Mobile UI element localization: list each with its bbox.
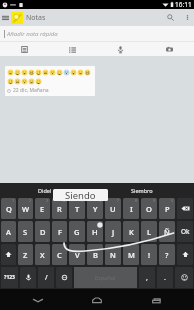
button[interactable]: Ñ	[159, 221, 175, 242]
button[interactable]: P	[159, 198, 175, 219]
staticText: /	[45, 273, 48, 283]
button[interactable]: C	[52, 244, 67, 265]
staticText: Añadir nota rápida	[7, 30, 58, 38]
button[interactable]: Hide keyboard	[16, 289, 60, 310]
button[interactable]: Navigation drawer	[0, 9, 11, 26]
button[interactable]: V	[69, 244, 85, 265]
staticText: J	[112, 227, 115, 237]
button[interactable]: K	[123, 221, 139, 242]
staticText: Q	[6, 204, 12, 214]
button[interactable]: ?123	[1, 267, 18, 288]
button[interactable]: ,	[139, 267, 155, 288]
button[interactable]: lo	[90, 183, 112, 197]
button[interactable]: B	[87, 244, 103, 265]
staticText: O	[146, 204, 152, 214]
button[interactable]: Y	[87, 198, 103, 219]
button[interactable]: Checklist	[48, 42, 96, 56]
button[interactable]: Q	[1, 198, 16, 219]
button[interactable]: R	[52, 198, 67, 219]
staticText: .	[164, 273, 166, 283]
staticText: L	[147, 227, 152, 237]
button[interactable]: L	[141, 221, 157, 242]
staticText: A	[6, 227, 11, 237]
button[interactable]: G	[69, 221, 85, 242]
button[interactable]: Text note	[0, 42, 48, 56]
staticText: Siendo	[65, 189, 96, 201]
button[interactable]: Voice note	[96, 42, 145, 56]
staticText: lo	[99, 187, 104, 194]
button[interactable]: Ok	[177, 221, 193, 242]
staticText: Notas	[26, 13, 46, 23]
staticText: ,	[146, 273, 148, 283]
button[interactable]: Shift	[177, 244, 193, 265]
staticText: ?	[165, 250, 169, 260]
staticText: Ok	[181, 227, 190, 236]
button[interactable]: Voice input	[20, 267, 36, 288]
staticText: X	[40, 250, 45, 260]
staticText: 0	[171, 198, 174, 203]
button[interactable]: ?	[159, 244, 175, 265]
button[interactable]: A	[1, 221, 16, 242]
button[interactable]: Didel	[0, 183, 90, 197]
staticText: N	[110, 250, 116, 260]
staticText: 22 dic, Mañana	[13, 87, 49, 94]
staticText: 5	[81, 198, 84, 203]
button[interactable]: Siembro	[112, 183, 172, 197]
staticText: S	[23, 227, 28, 237]
staticText: 7	[117, 198, 120, 203]
button[interactable]: M	[123, 244, 139, 265]
button[interactable]: H	[87, 221, 103, 242]
button[interactable]: Z	[18, 244, 33, 265]
button[interactable]: X	[35, 244, 50, 265]
button[interactable]: F	[52, 221, 67, 242]
button[interactable]: E	[35, 198, 50, 219]
staticText: U	[110, 204, 116, 214]
button[interactable]: !	[141, 244, 157, 265]
staticText: 1	[12, 198, 15, 203]
button[interactable]: Emoji	[175, 267, 193, 288]
staticText: K	[129, 227, 134, 237]
staticText: 3	[46, 198, 49, 203]
button[interactable]: .	[157, 267, 173, 288]
staticText: Z	[23, 250, 28, 260]
button[interactable]: 22 dic, Mañana	[5, 66, 95, 96]
button[interactable]: J	[105, 221, 121, 242]
staticText: R	[57, 204, 62, 214]
button[interactable]: S	[18, 221, 33, 242]
button[interactable]: I	[123, 198, 139, 219]
button[interactable]: Search	[160, 9, 180, 26]
button[interactable]: O	[141, 198, 157, 219]
button[interactable]: Recent apps	[135, 289, 179, 310]
button[interactable]: N	[105, 244, 121, 265]
button[interactable]: Añadir nota rápida	[0, 26, 194, 41]
button[interactable]: D	[35, 221, 50, 242]
staticText: M	[128, 250, 135, 260]
button[interactable]: Backspace	[177, 198, 193, 219]
button[interactable]: Change language	[56, 267, 72, 288]
button[interactable]: W	[18, 198, 33, 219]
button[interactable]: More options	[180, 9, 194, 26]
staticText: G	[74, 227, 80, 237]
staticText: Y	[93, 204, 98, 214]
button[interactable]: T	[69, 198, 85, 219]
button[interactable]: /	[38, 267, 54, 288]
staticText: H	[92, 227, 98, 237]
staticText: Español	[95, 274, 116, 281]
button[interactable]: Photo note	[145, 42, 194, 56]
button[interactable]: Shift	[1, 244, 16, 265]
staticText: E	[40, 204, 45, 214]
staticText: !	[148, 250, 151, 260]
staticText: ?123	[4, 274, 15, 281]
button[interactable]: Home	[75, 289, 119, 310]
staticText: 2	[29, 198, 32, 203]
button[interactable]: U	[105, 198, 121, 219]
staticText: V	[75, 250, 80, 260]
staticText: B	[93, 250, 98, 260]
staticText: F	[58, 227, 62, 237]
staticText: Siembro	[131, 187, 153, 194]
staticText: W	[22, 204, 30, 214]
staticText: Ñ	[164, 227, 170, 237]
staticText: I	[130, 204, 133, 214]
staticText: T	[75, 204, 80, 214]
